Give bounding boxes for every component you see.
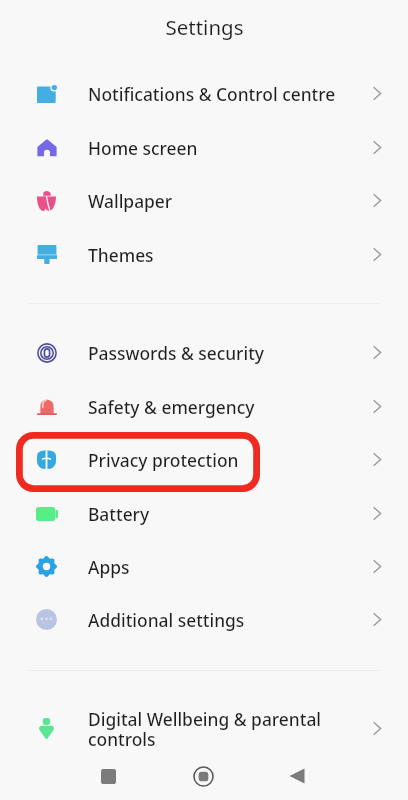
- button[interactable]: Back: [271, 754, 323, 798]
- staticText: Settings: [165, 13, 244, 41]
- button[interactable]: Digital Wellbeing & parental controls: [0, 702, 408, 755]
- staticText: Apps: [88, 555, 130, 579]
- button[interactable]: Additional settings: [0, 593, 408, 646]
- staticText: Home screen: [88, 136, 198, 160]
- staticText: Safety & emergency: [88, 395, 255, 419]
- staticText: Passwords & security: [88, 341, 264, 365]
- button[interactable]: Home: [177, 754, 229, 798]
- button[interactable]: Wallpaper: [0, 174, 408, 227]
- button[interactable]: Passwords & security: [0, 326, 408, 379]
- staticText: Additional settings: [88, 608, 245, 632]
- staticText: Notifications & Control centre: [88, 82, 336, 106]
- button[interactable]: Battery: [0, 487, 408, 540]
- button[interactable]: Home screen: [0, 121, 408, 174]
- button[interactable]: Themes: [0, 228, 408, 281]
- button[interactable]: Apps: [0, 540, 408, 593]
- button[interactable]: Recent apps: [82, 754, 134, 798]
- staticText: Themes: [88, 243, 154, 267]
- staticText: Privacy protection: [88, 448, 239, 472]
- button[interactable]: Notifications & Control centre: [0, 67, 408, 120]
- staticText: Digital Wellbeing & parental controls: [88, 707, 322, 752]
- staticText: Battery: [88, 502, 150, 526]
- button[interactable]: Privacy protection: [0, 433, 408, 486]
- button[interactable]: Safety & emergency: [0, 380, 408, 433]
- staticText: Wallpaper: [88, 189, 173, 213]
